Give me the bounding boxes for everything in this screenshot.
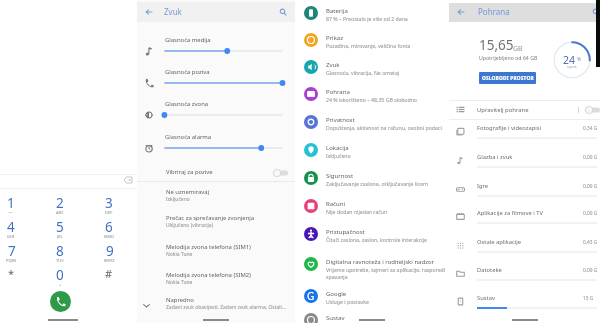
staticText: Zvuk [164, 6, 182, 17]
staticText: 0,00 G [583, 154, 598, 161]
button[interactable] [449, 118, 600, 144]
staticText: Isključeno [166, 196, 190, 203]
button[interactable]: Call [50, 291, 71, 312]
button[interactable]: 2 [42, 194, 78, 217]
button[interactable] [295, 81, 449, 107]
button[interactable]: 6 [91, 218, 127, 241]
staticText: Sustav [477, 294, 495, 302]
button[interactable]: 5 [42, 218, 78, 241]
staticText: Aplikacije za filmove i TV [477, 209, 543, 217]
button[interactable]: 9 [91, 242, 127, 265]
staticText: Pohrana [326, 88, 350, 96]
button[interactable] [295, 251, 449, 277]
button[interactable] [161, 47, 311, 55]
button[interactable] [449, 147, 600, 173]
button[interactable] [295, 137, 449, 163]
button[interactable] [295, 193, 449, 219]
button[interactable]: 1 [0, 194, 29, 217]
staticText: Uključeno (vibracija) [166, 222, 214, 229]
staticText: TUV [56, 258, 64, 263]
button[interactable]: OSLOBODI PROSTOR [479, 72, 536, 84]
button[interactable] [295, 165, 449, 191]
button[interactable] [449, 203, 600, 229]
staticText: Baterija [326, 7, 348, 15]
button[interactable] [137, 163, 295, 181]
staticText: Zaključavanje zaslona, otključavanje lic… [326, 180, 428, 187]
button[interactable] [449, 101, 600, 119]
staticText: spavanja [326, 273, 348, 280]
staticText: 0,00 G [583, 210, 598, 217]
staticText: Glazba i zvuk [477, 153, 513, 161]
staticText: Isključeno [326, 152, 351, 159]
staticText: 0,00 G [583, 183, 598, 190]
staticText: WXYZ [104, 258, 115, 263]
staticText: Digitalna ravnoteža i roditeljski nadzor [326, 258, 435, 266]
staticText: Dopuštenja, aktivnost na računu, osobni … [326, 124, 442, 131]
button[interactable]: Search [589, 5, 600, 18]
button[interactable] [161, 79, 311, 87]
staticText: Računi [326, 200, 345, 208]
staticText: 24 % iskorišteno – 48,35 GB slobodno [326, 96, 418, 103]
button[interactable]: Back [453, 4, 468, 19]
staticText: Vibriraj za pozive [166, 168, 213, 176]
staticText: PQRS [6, 258, 17, 263]
button[interactable] [295, 221, 449, 247]
staticText: 8 [56, 242, 64, 260]
button[interactable] [449, 176, 600, 202]
staticText: Google [326, 290, 347, 298]
button[interactable]: 0 [42, 266, 78, 289]
button[interactable] [295, 54, 449, 80]
staticText: 87 % – Preostalo je više od 2 dana [326, 15, 408, 22]
button[interactable]: 7 [0, 242, 29, 265]
button[interactable] [295, 307, 449, 323]
staticText: •• [9, 210, 13, 215]
staticText: 24 [563, 53, 576, 67]
staticText: Glasnoća medija [165, 36, 211, 44]
button[interactable] [295, 27, 449, 53]
button[interactable] [137, 239, 295, 263]
button[interactable]: * [0, 266, 29, 289]
button[interactable] [137, 184, 295, 208]
staticText: Melodija zvona telefona (SIM2) [166, 271, 251, 279]
staticText: 0,00 G [583, 267, 598, 274]
staticText: Lokacija [326, 144, 349, 152]
staticText: Usluge i postavke [326, 298, 369, 305]
staticText: OSLOBODI PROSTOR [482, 75, 534, 82]
button[interactable] [137, 295, 295, 317]
staticText: Sustav [326, 314, 345, 322]
staticText: MNO [104, 234, 114, 239]
button[interactable] [295, 283, 449, 309]
staticText: 0 [56, 266, 64, 284]
button[interactable] [295, 109, 449, 135]
staticText: Ostale aplikacije [477, 238, 522, 246]
staticText: 2 [56, 194, 64, 212]
staticText: Zvuk [326, 61, 340, 69]
staticText: Vrijeme upotrebe, tajmeri za aplikacije,… [326, 266, 446, 273]
staticText: Nokia Tune [166, 279, 193, 286]
button[interactable] [161, 111, 311, 119]
staticText: Datoteke [477, 266, 502, 274]
staticText: Pohrana [478, 6, 510, 17]
staticText: Napredno [166, 296, 194, 304]
button[interactable] [137, 210, 295, 234]
staticText: JKL [57, 234, 63, 239]
staticText: Fotografije i videozapisi [477, 124, 542, 132]
button[interactable]: Backspace [120, 173, 136, 187]
button[interactable] [161, 144, 311, 152]
staticText: Glasnoća alarma [165, 133, 212, 141]
button[interactable]: 8 [42, 242, 78, 265]
button[interactable]: Search [276, 5, 289, 18]
staticText: DEF [105, 210, 113, 215]
button[interactable] [449, 288, 600, 314]
button[interactable]: Back [141, 4, 156, 19]
button[interactable] [137, 267, 295, 291]
button[interactable]: 4 [0, 218, 29, 241]
staticText: Upravitelj pohrane [477, 106, 529, 114]
button[interactable]: 3 [91, 194, 127, 217]
button[interactable] [449, 232, 600, 258]
staticText: 3 [105, 194, 113, 212]
button[interactable]: # [91, 266, 127, 289]
button[interactable] [449, 260, 600, 286]
button[interactable] [295, 0, 449, 26]
staticText: 4 [7, 218, 15, 236]
